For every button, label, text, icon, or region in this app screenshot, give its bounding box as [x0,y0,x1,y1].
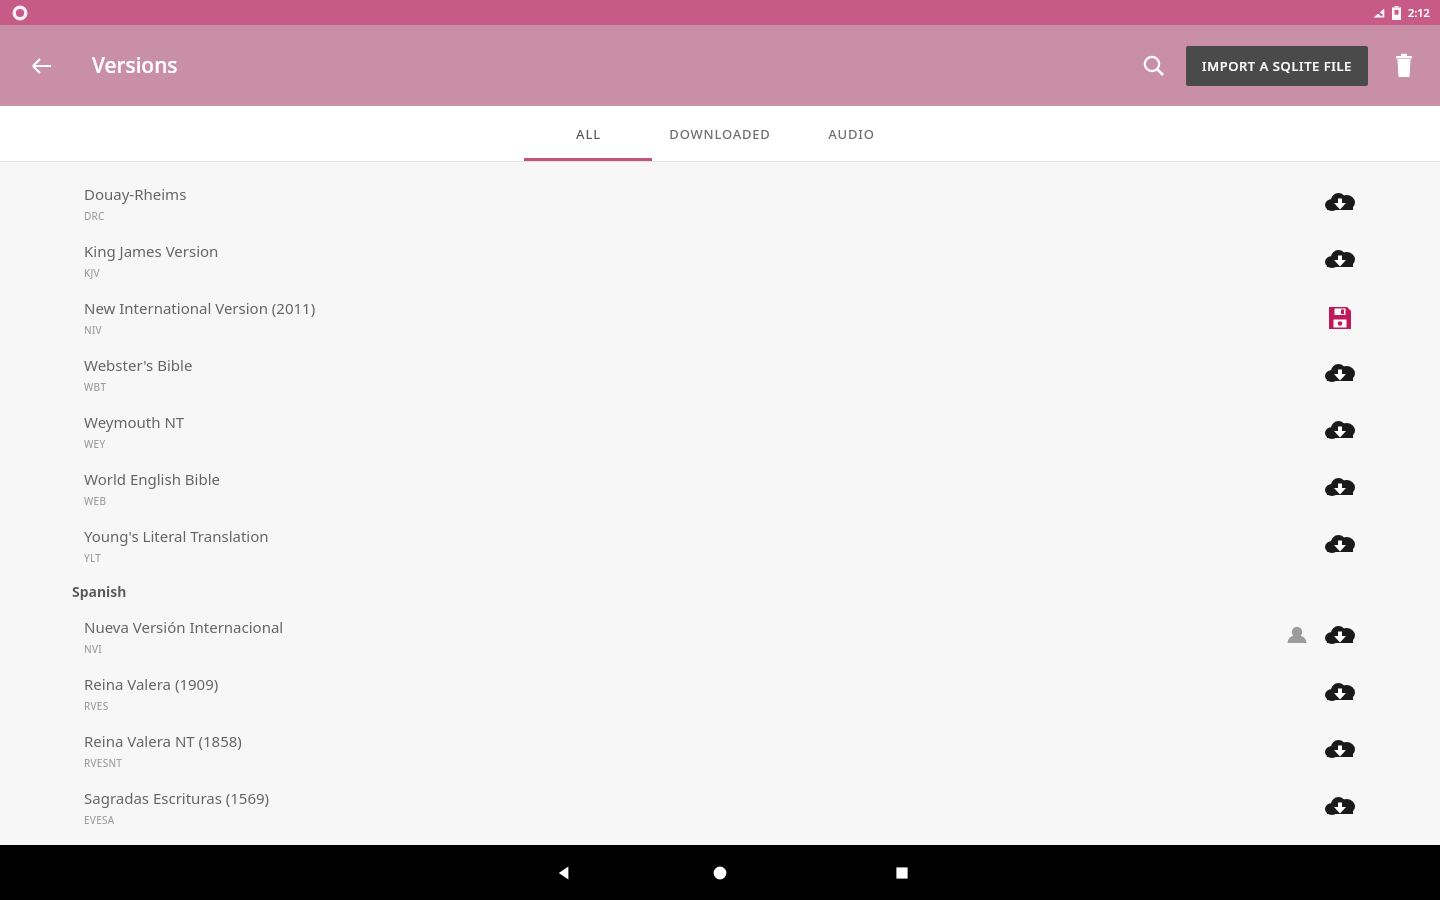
button[interactable]: Download [1320,184,1360,224]
button[interactable]: Download [1320,788,1360,828]
button[interactable]: Weymouth NT [0,403,1440,460]
button[interactable]: Download [1320,241,1360,281]
staticText: IMPORT A SQLITE FILE [1202,57,1352,75]
button[interactable]: Sagradas Escrituras (1569) [0,779,1440,836]
staticText: WEY [84,437,106,451]
button[interactable]: Back [540,849,588,897]
button[interactable]: IMPORT A SQLITE FILE [1186,46,1368,86]
button[interactable]: Webster's Bible [0,346,1440,403]
staticText: Versions [92,51,178,80]
staticText: DOWNLOADED [669,125,771,143]
button[interactable]: Download [1320,355,1360,395]
button[interactable]: Saved [1320,298,1360,338]
button[interactable]: Nueva Versión Internacional [0,608,1440,665]
staticText: NVI [84,642,102,656]
staticText: ALL [576,125,601,143]
staticText: AUDIO [828,125,875,143]
staticText: Reina Valera NT (1858) [84,731,242,751]
staticText: YLT [84,551,102,565]
button[interactable]: AUDIO [791,106,911,161]
button[interactable]: Download [1320,526,1360,566]
button[interactable]: Home [696,849,744,897]
staticText: 2:12 [1408,5,1430,20]
button[interactable]: Account [1278,618,1316,656]
staticText: DRC [84,209,105,223]
button[interactable]: Douay-Rheims [0,175,1440,232]
staticText: EVESA [84,813,115,827]
button[interactable]: Reina Valera NT (1858) [0,722,1440,779]
staticText: WEB [84,494,107,508]
staticText: RVES [84,699,109,713]
button[interactable]: Download [1320,412,1360,452]
staticText: Weymouth NT [84,412,185,432]
staticText: Spanish [72,582,127,601]
staticText: New International Version (2011) [84,298,316,318]
button[interactable]: Download [1320,674,1360,714]
button[interactable]: Search [1130,42,1178,90]
button[interactable]: DOWNLOADED [645,106,795,161]
button[interactable]: Download [1320,731,1360,771]
button[interactable]: Download [1320,617,1360,657]
staticText: RVESNT [84,756,123,770]
staticText: Reina Valera (1909) [84,674,219,694]
staticText: Young's Literal Translation [84,526,269,546]
button[interactable]: King James Version [0,232,1440,289]
staticText: KJV [84,266,100,280]
staticText: Nueva Versión Internacional [84,617,284,637]
button[interactable]: New International Version (2011) [0,289,1440,346]
staticText: Douay-Rheims [84,184,187,204]
button[interactable]: Download [1320,469,1360,509]
staticText: Sagradas Escrituras (1569) [84,788,270,808]
button[interactable]: Young's Literal Translation [0,517,1440,574]
button[interactable]: Recent apps [878,849,926,897]
staticText: NIV [84,323,102,337]
staticText: WBT [84,380,107,394]
staticText: Webster's Bible [84,355,193,375]
staticText: King James Version [84,241,219,261]
button[interactable]: World English Bible [0,460,1440,517]
button[interactable]: Delete [1380,42,1428,90]
staticText: World English Bible [84,469,221,489]
button[interactable]: ALL [524,106,652,161]
button[interactable]: Reina Valera (1909) [0,665,1440,722]
button[interactable]: Back [20,44,64,88]
